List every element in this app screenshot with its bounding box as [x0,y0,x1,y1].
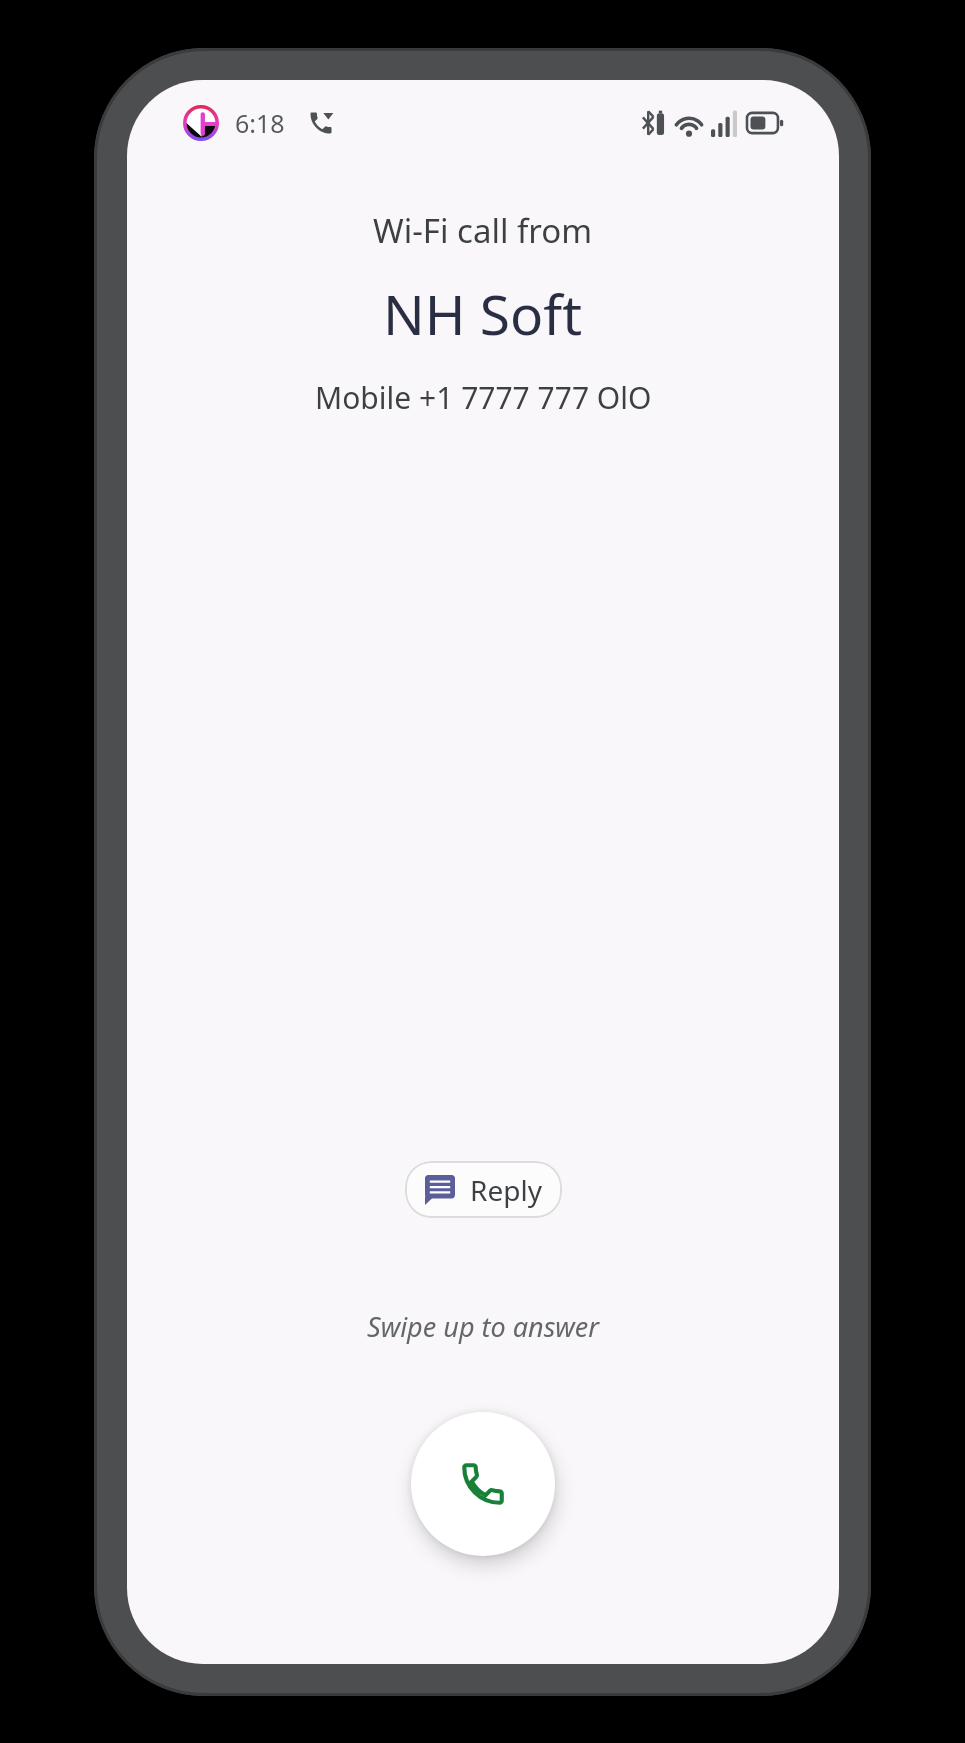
staticText: Reply [470,1171,542,1209]
staticText: NH Soft [383,276,583,351]
button[interactable] [411,1412,555,1556]
button[interactable]: Reply [405,1161,562,1218]
staticText: Swipe up to answer [367,1308,600,1345]
staticText: 6:18 [235,106,285,140]
staticText: Wi-Fi call from [373,208,593,253]
staticText: Mobile +1 7777 777 OlO [315,377,652,418]
